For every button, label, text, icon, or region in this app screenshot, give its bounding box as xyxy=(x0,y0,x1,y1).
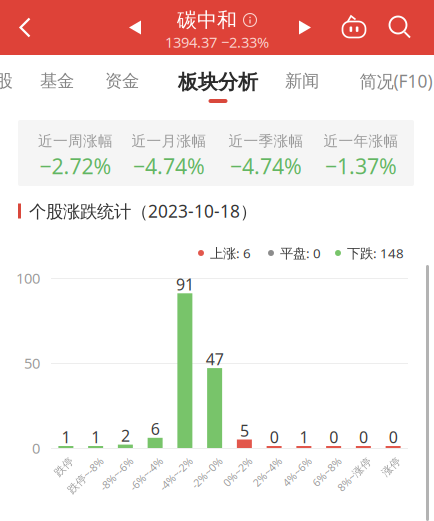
button[interactable]: Next sector xyxy=(288,0,322,55)
staticText: 涨停 xyxy=(377,452,399,465)
button[interactable]: 股 xyxy=(0,64,19,98)
staticText: 1 xyxy=(91,426,100,448)
button[interactable]: Back xyxy=(0,0,50,55)
staticText: 1394.37 −2.33% xyxy=(165,32,269,52)
staticText: -8%~-6% xyxy=(89,452,131,466)
staticText: 股 xyxy=(0,70,12,92)
staticText: 上涨: 6 xyxy=(210,244,251,262)
button[interactable]: 基金 xyxy=(31,64,83,98)
staticText: 下跌: 148 xyxy=(347,244,404,262)
button[interactable]: Previous sector xyxy=(118,0,152,55)
staticText: 0 xyxy=(32,438,40,458)
staticText: 6 xyxy=(151,418,160,439)
staticText: 0 xyxy=(329,426,338,448)
staticText: −4.74% xyxy=(133,152,205,180)
staticText: 0 xyxy=(389,426,398,448)
staticText: −1.37% xyxy=(325,152,397,180)
staticText: 近一季涨幅 xyxy=(228,132,303,150)
staticText: 100 xyxy=(16,268,40,288)
staticText: −4.74% xyxy=(230,152,302,180)
staticText: 近一月涨幅 xyxy=(131,132,206,150)
staticText: 5 xyxy=(240,420,249,441)
button[interactable]: 简况(F10) xyxy=(353,64,434,98)
button[interactable]: 新闻 xyxy=(276,64,328,98)
staticText: 跌停~-8% xyxy=(56,452,102,466)
staticText: 新闻 xyxy=(285,70,319,92)
staticText: 个股涨跌统计（2023-10-18） xyxy=(29,199,257,222)
staticText: 跌停 xyxy=(50,452,72,465)
staticText: -4%~-2% xyxy=(149,452,191,466)
staticText: 47 xyxy=(206,348,224,370)
staticText: 平盘: 0 xyxy=(280,244,321,262)
staticText: 基金 xyxy=(40,70,74,92)
staticText: 0 xyxy=(359,426,368,448)
staticText: −2.72% xyxy=(39,152,111,180)
staticText: -2%~0% xyxy=(182,452,221,466)
staticText: 50 xyxy=(24,353,40,373)
staticText: 8%~涨停 xyxy=(326,452,369,466)
staticText: 简况(F10) xyxy=(359,69,432,92)
button[interactable]: Search xyxy=(379,0,423,55)
staticText: 1 xyxy=(61,426,70,448)
staticText: 0%~2% xyxy=(214,452,250,466)
staticText: 2%~4% xyxy=(244,452,280,466)
staticText: -6%~-4% xyxy=(119,452,161,466)
staticText: 4%~6% xyxy=(274,452,310,466)
button[interactable]: 板块分析 xyxy=(168,55,268,105)
staticText: 板块分析 xyxy=(178,70,258,94)
staticText: 6%~8% xyxy=(304,452,340,466)
staticText: 资金 xyxy=(105,70,139,92)
button[interactable]: 资金 xyxy=(96,64,148,98)
staticText: 0 xyxy=(270,426,279,448)
staticText: 碳中和 xyxy=(177,8,237,32)
staticText: 近一年涨幅 xyxy=(323,132,398,150)
staticText: 2 xyxy=(121,425,130,446)
staticText: 1 xyxy=(299,426,308,448)
button[interactable]: AI assistant xyxy=(332,0,376,55)
staticText: 近一周涨幅 xyxy=(38,132,113,150)
staticText: 91 xyxy=(176,274,194,295)
